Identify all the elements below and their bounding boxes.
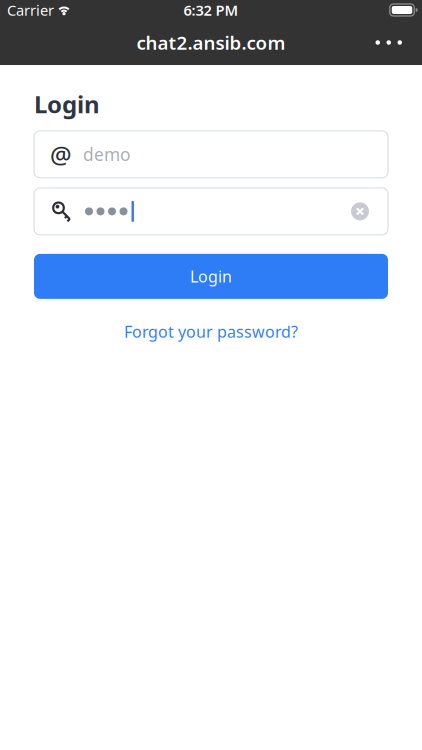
- staticText: Forgot your password?: [124, 321, 298, 342]
- staticText: demo: [83, 143, 130, 166]
- staticText: Login: [190, 266, 232, 287]
- button[interactable]: Login: [34, 254, 388, 299]
- button[interactable]: Forgot your password?: [124, 321, 298, 342]
- staticText: Login: [34, 88, 100, 120]
- staticText: chat2.ansib.com: [136, 30, 285, 55]
- button[interactable]: More options: [365, 28, 412, 57]
- staticText: @: [50, 138, 72, 170]
- button[interactable]: Clear text: [343, 194, 377, 228]
- staticText: 6:32 PM: [183, 0, 238, 20]
- staticText: Carrier: [7, 0, 54, 20]
